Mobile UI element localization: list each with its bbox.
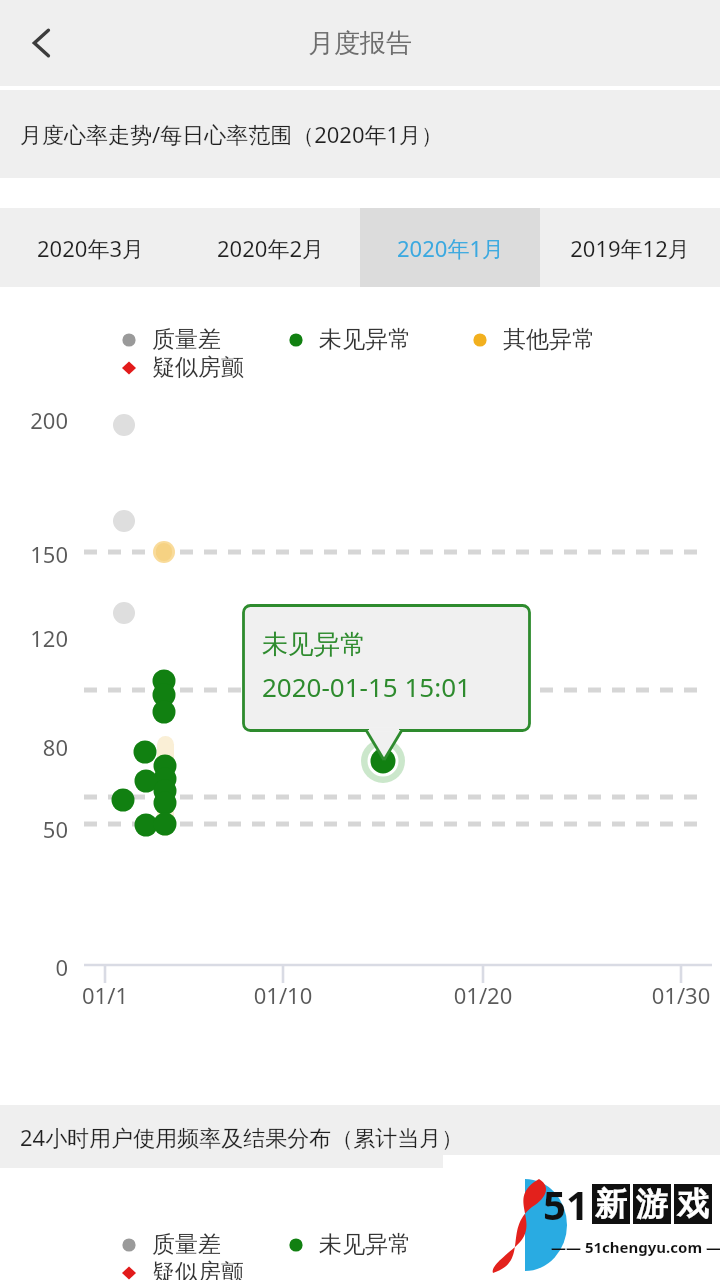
staticText: 质量差 [152,325,221,354]
staticText: 0 [0,952,68,982]
staticText: 120 [0,623,68,653]
button[interactable]: Back [12,13,72,73]
staticText: 2020-01-15 15:01 [262,669,471,704]
button[interactable]: 质量差 [118,1230,221,1259]
button[interactable]: 未见异常 [285,325,411,354]
staticText: 01/10 [233,980,333,1010]
staticText: 游 [636,1184,668,1224]
button[interactable]: 2020年1月 [360,208,540,287]
staticText: 未见异常 [262,628,366,661]
staticText: 新 [595,1184,627,1224]
staticText: 未见异常 [319,325,411,354]
staticText: 疑似房颤 [152,1258,244,1280]
staticText: —— 51chengyu.com —— [551,1237,720,1257]
staticText: 月度报告 [308,27,412,60]
button[interactable]: 疑似房颤 [118,353,244,382]
staticText: 51 [543,1177,589,1231]
button[interactable]: 质量差 [118,325,221,354]
staticText: 未见异常 [319,1230,411,1259]
staticText: 50 [0,814,68,844]
staticText: 月度心率走势/每日心率范围（2020年1月） [20,119,444,149]
staticText: 2020年2月 [217,233,324,263]
staticText: 24小时用户使用频率及结果分布（累计当月） [20,1122,464,1152]
staticText: 01/1 [55,980,155,1010]
staticText: 80 [0,732,68,762]
button[interactable]: 2020年3月 [0,208,180,287]
button[interactable]: 未见异常 [285,1230,411,1259]
staticText: 200 [0,405,68,435]
staticText: 150 [0,539,68,569]
staticText: 01/30 [631,980,720,1010]
staticText: 2020年3月 [37,233,144,263]
staticText: 质量差 [152,1230,221,1259]
staticText: 01/20 [433,980,533,1010]
button[interactable]: 2019年12月 [540,208,720,287]
staticText: 2020年1月 [397,233,504,263]
staticText: 戏 [677,1184,709,1224]
staticText: 其他异常 [503,325,595,354]
staticText: 疑似房颤 [152,353,244,382]
button[interactable]: 其他异常 [469,325,595,354]
button[interactable]: 疑似房颤 [118,1258,244,1280]
button[interactable]: 2020年2月 [180,208,360,287]
staticText: 2019年12月 [570,233,690,263]
